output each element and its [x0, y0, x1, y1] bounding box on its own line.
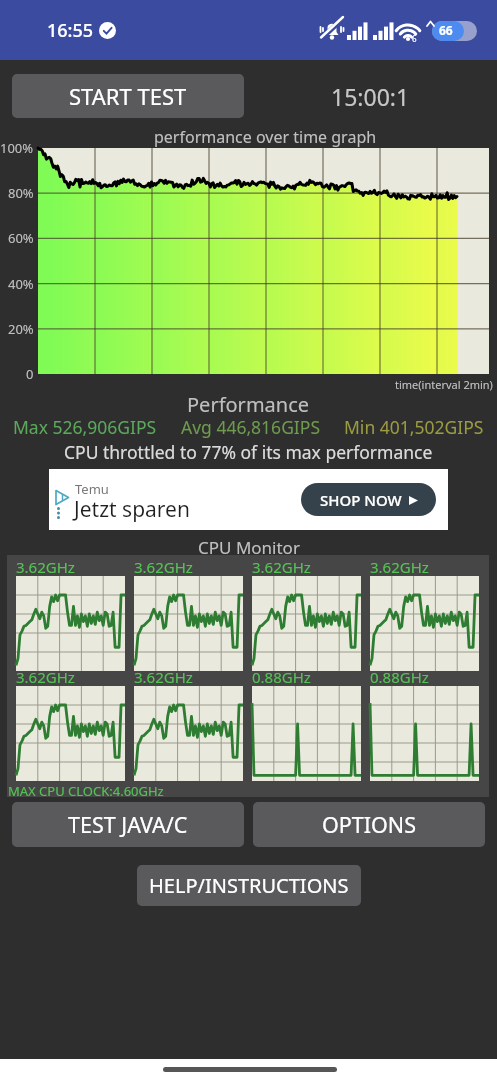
staticText: 3.62GHz	[252, 557, 311, 577]
button[interactable]: Temu	[49, 469, 448, 530]
staticText: Max 526,906GIPS	[13, 415, 157, 439]
staticText: MAX CPU CLOCK:4.60GHz	[8, 782, 164, 800]
staticText: 3.62GHz	[370, 557, 429, 577]
staticText: HELP/INSTRUCTIONS	[149, 872, 349, 899]
staticText: 3.62GHz	[134, 557, 193, 577]
staticText: Temu	[75, 480, 109, 498]
staticText: Min 401,502GIPS	[344, 415, 484, 439]
staticText: 0	[26, 365, 34, 383]
staticText: 100%	[0, 139, 34, 157]
staticText: 60%	[8, 229, 34, 247]
staticText: 0.88GHz	[370, 667, 429, 687]
staticText: time(interval 2min)	[395, 377, 493, 392]
staticText: Avg 446,816GIPS	[181, 415, 321, 439]
staticText: 16:55	[47, 18, 94, 43]
staticText: Performance	[187, 391, 310, 418]
button[interactable]: SHOP NOW	[301, 483, 436, 516]
staticText: SHOP NOW	[320, 490, 402, 510]
staticText: 0.88GHz	[252, 667, 311, 687]
staticText: OPTIONS	[322, 810, 416, 839]
staticText: CPU Monitor	[198, 536, 300, 559]
staticText: 3.62GHz	[16, 557, 75, 577]
button[interactable]: TEST JAVA/C	[12, 802, 244, 847]
staticText: 15:00:1	[331, 81, 410, 112]
staticText: 20%	[8, 320, 34, 338]
staticText: 3.62GHz	[134, 667, 193, 687]
staticText: 66	[439, 22, 453, 38]
button[interactable]: HELP/INSTRUCTIONS	[137, 865, 361, 906]
button[interactable]: OPTIONS	[253, 802, 485, 847]
staticText: performance over time graph	[154, 126, 377, 148]
staticText: 40%	[8, 275, 34, 293]
staticText: Jetzt sparen	[74, 495, 190, 524]
staticText: 80%	[8, 184, 34, 202]
staticText: TEST JAVA/C	[68, 810, 188, 839]
staticText: 6	[412, 33, 417, 44]
button[interactable]: START TEST	[12, 74, 244, 118]
staticText: 3.62GHz	[16, 667, 75, 687]
staticText: CPU throttled to 77% of its max performa…	[64, 440, 433, 464]
staticText: START TEST	[69, 81, 187, 111]
